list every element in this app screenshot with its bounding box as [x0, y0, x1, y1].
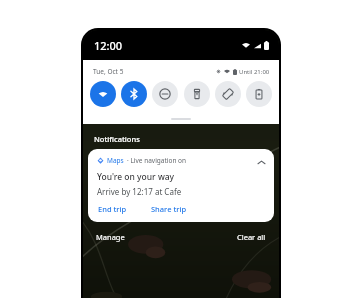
- staticText: Maps: [107, 156, 124, 165]
- button[interactable]: Collapse notification: [255, 156, 267, 168]
- button[interactable]: Manage: [94, 230, 127, 244]
- staticText: Until 21:00: [239, 68, 270, 76]
- button[interactable]: Clear all: [235, 230, 268, 244]
- staticText: · Live navigation on: [127, 156, 187, 165]
- button[interactable]: Bluetooth: [121, 81, 147, 107]
- staticText: Manage: [96, 232, 125, 242]
- staticText: Tue, Oct 5: [93, 67, 124, 76]
- staticText: Arrive by 12:17 at Cafe: [97, 186, 182, 197]
- button[interactable]: Do not disturb: [152, 81, 178, 107]
- staticText: Notifications: [94, 134, 140, 144]
- button[interactable]: Share trip: [150, 203, 188, 215]
- button[interactable]: Auto-rotate: [215, 81, 241, 107]
- staticText: Clear all: [237, 232, 266, 242]
- staticText: Share trip: [151, 204, 187, 214]
- button[interactable]: Flashlight: [184, 81, 210, 107]
- button[interactable]: Wi-Fi: [90, 81, 116, 107]
- staticText: 12:00: [94, 38, 123, 53]
- staticText: You're on your way: [97, 171, 175, 183]
- button[interactable]: End trip: [97, 203, 128, 215]
- button[interactable]: Maps: [88, 149, 274, 222]
- button[interactable]: Battery Saver: [246, 81, 272, 107]
- staticText: End trip: [98, 204, 127, 214]
